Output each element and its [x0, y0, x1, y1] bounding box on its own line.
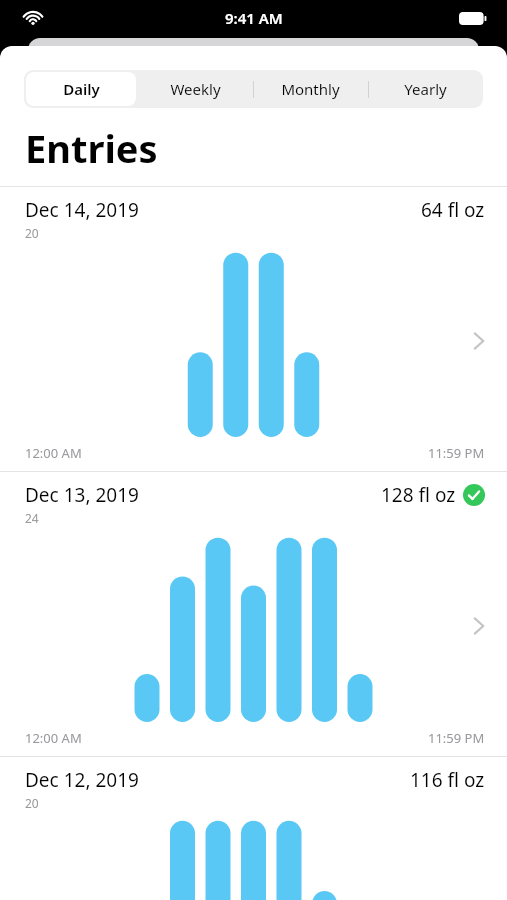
button[interactable]: Monthly [255, 72, 366, 106]
button[interactable]: Daily [26, 72, 136, 106]
staticText: Monthly [281, 79, 340, 99]
other: View details [473, 616, 485, 636]
other: View details [473, 331, 485, 351]
staticText: Dec 14, 2019 [25, 197, 139, 223]
staticText: Dec 13, 2019 [25, 482, 139, 508]
button[interactable]: Weekly [140, 72, 251, 106]
button[interactable]: Dec 12, 2019 [0, 756, 507, 900]
staticText: 24 [25, 510, 39, 526]
staticText: 20 [25, 225, 39, 241]
staticText: 116 fl oz [410, 767, 485, 793]
staticText: Entries [25, 122, 158, 174]
staticText: 11:59 PM [428, 444, 485, 462]
staticText: Weekly [170, 79, 221, 99]
staticText: 9:41 AM [225, 8, 283, 28]
button[interactable]: Dec 13, 2019 [0, 471, 507, 756]
staticText: 128 fl oz [381, 482, 456, 508]
staticText: Dec 12, 2019 [25, 767, 139, 793]
staticText: 12:00 AM [25, 444, 82, 462]
staticText: 12:00 AM [25, 729, 82, 747]
button[interactable]: Yearly [370, 72, 481, 106]
staticText: 64 fl oz [421, 197, 485, 223]
staticText: 11:59 PM [428, 729, 485, 747]
staticText: Daily [63, 79, 100, 99]
staticText: Yearly [404, 79, 447, 99]
staticText: 20 [25, 795, 39, 811]
other: Goal reached [463, 484, 485, 506]
button[interactable]: Dec 14, 2019 [0, 186, 507, 471]
